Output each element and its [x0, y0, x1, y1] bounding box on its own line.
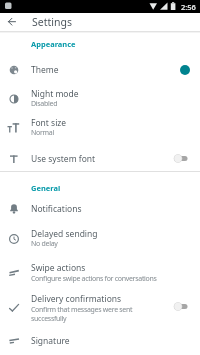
button[interactable]: Signature	[0, 326, 200, 355]
staticText: No delay	[31, 239, 58, 249]
staticText: Swipe actions	[31, 262, 86, 274]
staticText: Settings	[32, 15, 72, 29]
button[interactable]: Night mode	[0, 84, 200, 113]
staticText: Confirm that messages were sent successf…	[31, 305, 141, 323]
button[interactable]: Delivery confirmations	[0, 287, 200, 329]
button[interactable]	[0, 13, 24, 31]
staticText: Configure swipe actions for conversation…	[31, 274, 157, 284]
staticText: Notifications	[31, 203, 82, 215]
staticText: Theme	[31, 64, 59, 76]
staticText: 2:56	[181, 2, 196, 12]
staticText: Disabled	[31, 99, 58, 109]
button[interactable]: Swipe actions	[0, 258, 200, 287]
button[interactable]: Font size	[0, 113, 200, 142]
staticText: Appearance	[31, 39, 76, 49]
staticText: Font size	[31, 117, 67, 129]
button[interactable]: Use system font	[0, 144, 200, 173]
staticText: General	[31, 183, 61, 193]
staticText: Night mode	[31, 88, 79, 100]
staticText: Normal	[31, 128, 54, 138]
staticText: Delayed sending	[31, 228, 98, 240]
button[interactable]: Delayed sending	[0, 224, 200, 253]
button[interactable]: Notifications	[0, 194, 200, 223]
staticText: Signature	[31, 335, 70, 347]
button[interactable]: Theme	[0, 56, 200, 84]
staticText: Use system font	[31, 153, 96, 165]
staticText: Delivery confirmations	[31, 293, 122, 305]
